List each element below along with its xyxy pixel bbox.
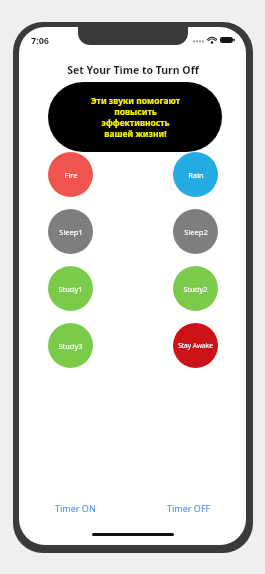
button[interactable]: Sleep1 xyxy=(48,209,93,254)
staticText: Timer OFF xyxy=(167,502,211,514)
other: Home indicator xyxy=(92,533,174,536)
button[interactable]: Timer OFF xyxy=(132,496,246,520)
button[interactable]: Timer ON xyxy=(19,496,132,520)
button[interactable]: Study2 xyxy=(173,266,218,311)
button[interactable]: Sleep2 xyxy=(173,209,218,254)
staticText: Timer ON xyxy=(55,502,96,514)
staticText: Study1 xyxy=(58,284,83,294)
staticText: Sleep1 xyxy=(59,227,83,237)
staticText: Study2 xyxy=(183,284,208,294)
staticText: Rain xyxy=(188,170,204,180)
button[interactable]: Rain xyxy=(173,152,218,197)
button[interactable]: Study3 xyxy=(48,323,93,368)
button[interactable]: Study1 xyxy=(48,266,93,311)
staticText: Эти звуки помогают повысить эффективност… xyxy=(91,95,180,139)
staticText: Stay Awake xyxy=(178,341,213,350)
staticText: Fire xyxy=(64,170,78,180)
button[interactable]: Stay Awake xyxy=(173,323,218,368)
staticText: 7:06 xyxy=(31,34,49,46)
staticText: Set Your Time to Turn Off xyxy=(67,63,199,77)
staticText: Sleep2 xyxy=(184,227,208,237)
button[interactable]: Fire xyxy=(48,152,93,197)
staticText: Study3 xyxy=(58,341,83,351)
